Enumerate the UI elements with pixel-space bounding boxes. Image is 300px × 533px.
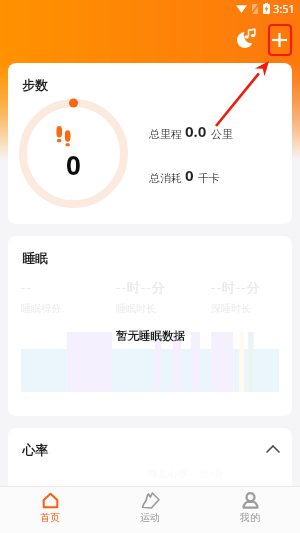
staticText: 总里程 <box>149 127 182 141</box>
staticText: 深睡时长 <box>211 302 251 315</box>
button[interactable]: Add <box>262 23 296 57</box>
staticText: 睡眠时长 <box>116 302 156 315</box>
staticText: 千卡 <box>198 171 220 185</box>
staticText: --时--分 <box>211 278 261 296</box>
staticText: 总消耗 <box>149 171 182 185</box>
button[interactable]: 心率 <box>8 428 292 508</box>
button[interactable]: Sleep music <box>228 23 262 57</box>
staticText: 运动 <box>140 511 160 524</box>
staticText: 睡眠得分 <box>21 302 61 315</box>
button[interactable]: 运动 <box>100 487 200 533</box>
staticText: -- <box>21 278 32 296</box>
staticText: 睡眠 <box>22 250 48 266</box>
staticText: 0 <box>66 147 81 182</box>
staticText: 首页 <box>40 511 60 524</box>
staticText: 0 <box>185 165 194 185</box>
staticText: -- <box>22 390 28 402</box>
staticText: 3:51 <box>273 1 295 16</box>
button[interactable]: 我的 <box>200 487 300 533</box>
button[interactable]: 睡眠 <box>8 236 292 416</box>
staticText: 暂无睡眠数据 <box>116 329 185 343</box>
staticText: 公里 <box>211 127 233 141</box>
button[interactable]: Collapse heart rate <box>258 434 288 464</box>
staticText: --时--分 <box>116 278 166 296</box>
staticText: 步数 <box>22 77 48 93</box>
button[interactable]: 首页 <box>0 487 100 533</box>
staticText: -- <box>262 390 268 402</box>
staticText: 心率 <box>22 442 48 458</box>
button[interactable]: 步数 <box>8 63 292 224</box>
staticText: 0.0 <box>185 121 207 141</box>
staticText: 我的 <box>240 511 260 524</box>
